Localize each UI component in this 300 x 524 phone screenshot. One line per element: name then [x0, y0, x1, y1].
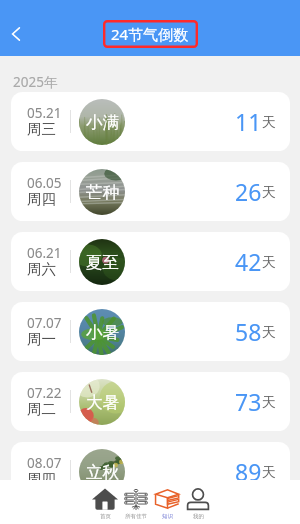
- button[interactable]: 07.22: [11, 372, 290, 431]
- staticText: 我的: [193, 513, 204, 520]
- button[interactable]: 07.07: [11, 302, 290, 361]
- button[interactable]: 06.21: [11, 232, 290, 291]
- staticText: 89: [235, 456, 262, 487]
- staticText: 42: [235, 246, 262, 277]
- staticText: 天: [262, 394, 276, 412]
- staticText: 小暑: [86, 322, 119, 343]
- button[interactable]: 06.05: [11, 162, 290, 221]
- staticText: 2025年: [13, 73, 58, 91]
- staticText: 天: [262, 184, 276, 202]
- button[interactable]: Back: [0, 14, 32, 54]
- staticText: 大暑: [86, 392, 119, 413]
- staticText: 所有佳节: [125, 513, 147, 520]
- staticText: 周四: [27, 470, 56, 488]
- staticText: 周四: [27, 190, 56, 208]
- staticText: 58: [235, 316, 262, 347]
- staticText: 首页: [100, 513, 111, 520]
- staticText: 11: [235, 106, 262, 137]
- staticText: 08.07: [27, 454, 62, 472]
- staticText: 天: [262, 254, 276, 272]
- staticText: 07.22: [27, 384, 62, 402]
- staticText: 芒种: [86, 182, 119, 203]
- button[interactable]: 我的: [185, 480, 211, 520]
- staticText: 06.21: [27, 244, 62, 262]
- staticText: 06.05: [27, 174, 62, 192]
- button[interactable]: 05.21: [11, 92, 290, 151]
- staticText: 立秋: [86, 462, 119, 483]
- staticText: 夏至: [86, 252, 119, 273]
- staticText: 26: [235, 176, 262, 207]
- staticText: 24节气倒数: [111, 24, 189, 44]
- button[interactable]: 08.07: [11, 442, 290, 501]
- staticText: 知识: [162, 513, 173, 520]
- staticText: 周六: [27, 260, 56, 278]
- staticText: 周一: [27, 330, 56, 348]
- staticText: 天: [262, 464, 276, 482]
- staticText: 周二: [27, 400, 56, 418]
- staticText: 周三: [27, 120, 56, 138]
- staticText: 05.21: [27, 104, 62, 122]
- button[interactable]: 知识: [154, 480, 180, 520]
- staticText: 小满: [86, 112, 119, 133]
- staticText: 天: [262, 324, 276, 342]
- staticText: 73: [235, 386, 262, 417]
- staticText: 07.07: [27, 314, 62, 332]
- button[interactable]: 所有佳节: [123, 480, 149, 520]
- staticText: 天: [262, 114, 276, 132]
- button[interactable]: 首页: [92, 480, 118, 520]
